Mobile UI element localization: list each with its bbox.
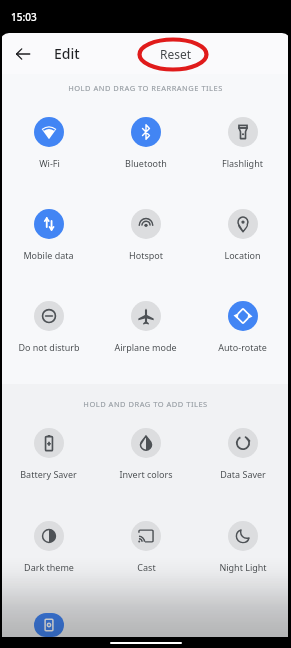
staticText: Dark theme — [24, 561, 74, 573]
button[interactable]: Auto-rotate — [215, 301, 270, 353]
button[interactable]: Back — [9, 40, 37, 68]
button[interactable]: Wi-Fi — [31, 117, 67, 169]
staticText: HOLD AND DRAG TO REARRANGE TILES — [0, 83, 291, 93]
staticText: Auto-rotate — [218, 341, 267, 353]
button[interactable]: Night Light — [216, 521, 270, 573]
staticText: Night Light — [219, 561, 267, 573]
button[interactable]: Data Saver — [217, 428, 269, 480]
button[interactable]: Dark theme — [21, 521, 77, 573]
button[interactable]: Location — [221, 209, 264, 261]
button[interactable]: Bluetooth — [122, 117, 170, 169]
staticText: Edit — [54, 44, 80, 63]
button[interactable]: Mobile data — [20, 209, 77, 261]
staticText: Reset — [160, 46, 192, 62]
staticText: Airplane mode — [114, 341, 177, 353]
staticText: HOLD AND DRAG TO ADD TILES — [0, 399, 291, 409]
button[interactable]: Screenshot — [22, 613, 76, 637]
staticText: Do not disturb — [18, 341, 80, 353]
button[interactable]: Do not disturb — [15, 301, 83, 353]
staticText: Flashlight — [222, 157, 263, 169]
staticText: Data Saver — [220, 468, 266, 480]
staticText: Invert colors — [119, 468, 173, 480]
staticText: Location — [224, 249, 261, 261]
button[interactable]: Battery Saver — [17, 428, 80, 480]
button[interactable]: Cast — [128, 521, 164, 573]
staticText: Wi-Fi — [39, 157, 60, 169]
button[interactable]: Hotspot — [126, 209, 166, 261]
button[interactable]: Flashlight — [219, 117, 266, 169]
staticText: Bluetooth — [125, 157, 167, 169]
staticText: Cast — [137, 561, 156, 573]
button[interactable]: Airplane mode — [111, 301, 180, 353]
staticText: Battery Saver — [20, 468, 77, 480]
button[interactable]: Reset — [152, 41, 200, 67]
staticText: 15:03 — [11, 10, 37, 24]
staticText: Mobile data — [23, 249, 74, 261]
staticText: Hotspot — [129, 249, 163, 261]
button[interactable]: Invert colors — [116, 428, 176, 480]
